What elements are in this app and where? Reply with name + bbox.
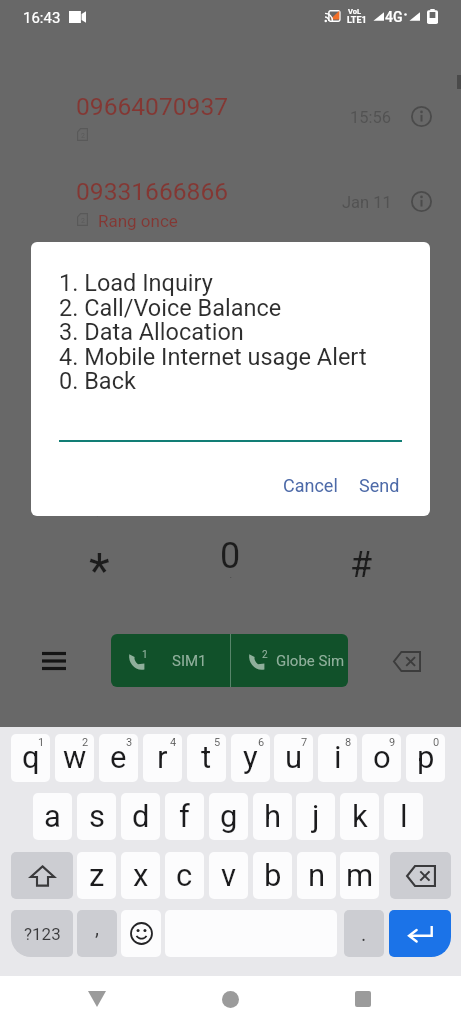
button[interactable]: c [165,852,204,899]
button[interactable]: w [55,734,94,782]
button[interactable]: , [77,910,117,957]
button[interactable]: v [209,852,248,899]
button[interactable]: Call details [404,99,438,133]
button[interactable]: t [187,734,226,782]
button[interactable]: k [340,793,379,840]
staticText: 1 [38,736,45,749]
staticText: y [243,739,258,775]
staticText: Cancel [283,475,338,496]
button[interactable]: Enter [389,910,451,957]
button[interactable]: Recent apps [343,979,383,1019]
staticText: Jan 11 [342,193,392,212]
button[interactable]: 0 [207,534,254,581]
staticText: f [179,798,190,834]
staticText: l [400,798,408,834]
button[interactable]: * [76,534,123,581]
staticText: d [132,798,150,834]
button[interactable]: # [338,534,385,581]
staticText: j [312,798,320,834]
staticText: 2. Call/Voice Balance [59,294,282,322]
button[interactable]: i [318,734,357,782]
staticText: 16:43 [23,9,61,27]
staticText: PQRS [83,504,114,518]
button[interactable]: 1 [111,634,230,687]
button[interactable]: Send [351,466,407,504]
button[interactable]: e [99,734,138,782]
staticText: # [350,544,373,586]
staticText: m [346,857,374,893]
button[interactable]: g [209,793,248,840]
staticText: 2 [262,649,268,661]
staticText: 8 [345,736,352,749]
staticText: 3. Data Allocation [59,318,244,346]
staticText: t [201,739,212,775]
button[interactable]: x [121,852,160,899]
button[interactable]: 2 [231,634,348,687]
button[interactable]: o [362,734,401,782]
button[interactable]: d [121,793,160,840]
staticText: n [308,857,326,893]
staticText: 6 [258,736,265,749]
staticText: 09664070937 [76,92,229,121]
button[interactable]: z [77,852,116,899]
button[interactable]: y [231,734,270,782]
staticText: i [334,739,342,775]
button[interactable]: a [33,793,72,840]
button[interactable]: f [165,793,204,840]
staticText: 2 [82,736,89,749]
button[interactable]: l [384,793,423,840]
button[interactable]: b [253,852,292,899]
button[interactable]: m [340,852,379,899]
staticText: VoL [348,7,362,16]
button[interactable]: r [143,734,182,782]
button[interactable]: . [344,910,384,957]
staticText: 0 [433,736,440,749]
button[interactable]: Call details [404,184,438,218]
button[interactable]: p [406,734,445,782]
staticText: b [264,857,282,893]
button[interactable]: Backspace [390,852,451,899]
button[interactable]: 09664070937 [0,60,461,140]
staticText: 4. Mobile Internet usage Alert [59,343,367,371]
staticText: 2 [81,217,85,225]
staticText: 7 [301,736,308,749]
staticText: h [264,798,282,834]
staticText: g [220,798,238,834]
button[interactable]: Cancel [276,466,344,504]
staticText: 1 [142,649,148,661]
staticText: u [285,739,303,775]
staticText: v [221,857,237,893]
button[interactable]: Emoji [121,910,161,957]
staticText: . [361,922,367,945]
staticText: q [22,739,40,775]
button[interactable]: Delete [387,641,427,681]
staticText: , [95,916,99,939]
staticText: c [176,857,193,893]
button[interactable]: Shift [11,852,73,899]
staticText: k [352,798,368,834]
staticText: z [89,857,105,893]
staticText: 1. Load Inquiry [59,269,213,297]
staticText: SIM1 [172,652,207,670]
staticText: LTE1 [347,15,367,26]
staticText: 09331666866 [76,177,229,206]
button[interactable]: q [11,734,50,782]
staticText: 5 [214,736,221,749]
button[interactable]: u [274,734,313,782]
button[interactable]: ?123 [11,910,73,957]
button[interactable]: n [297,852,336,899]
staticText: TUV [222,504,245,518]
staticText: p [417,739,435,775]
button[interactable]: j [296,793,335,840]
button[interactable]: s [77,793,116,840]
button[interactable]: Hide keyboard [77,979,117,1019]
staticText: Send [359,475,400,496]
staticText: 15:56 [350,108,392,127]
staticText: a [44,798,61,834]
staticText: x [133,857,149,893]
button[interactable]: 09331666866 [0,145,461,225]
button[interactable]: Menu [34,641,74,681]
button[interactable]: h [253,793,292,840]
button[interactable]: Home [210,979,250,1019]
